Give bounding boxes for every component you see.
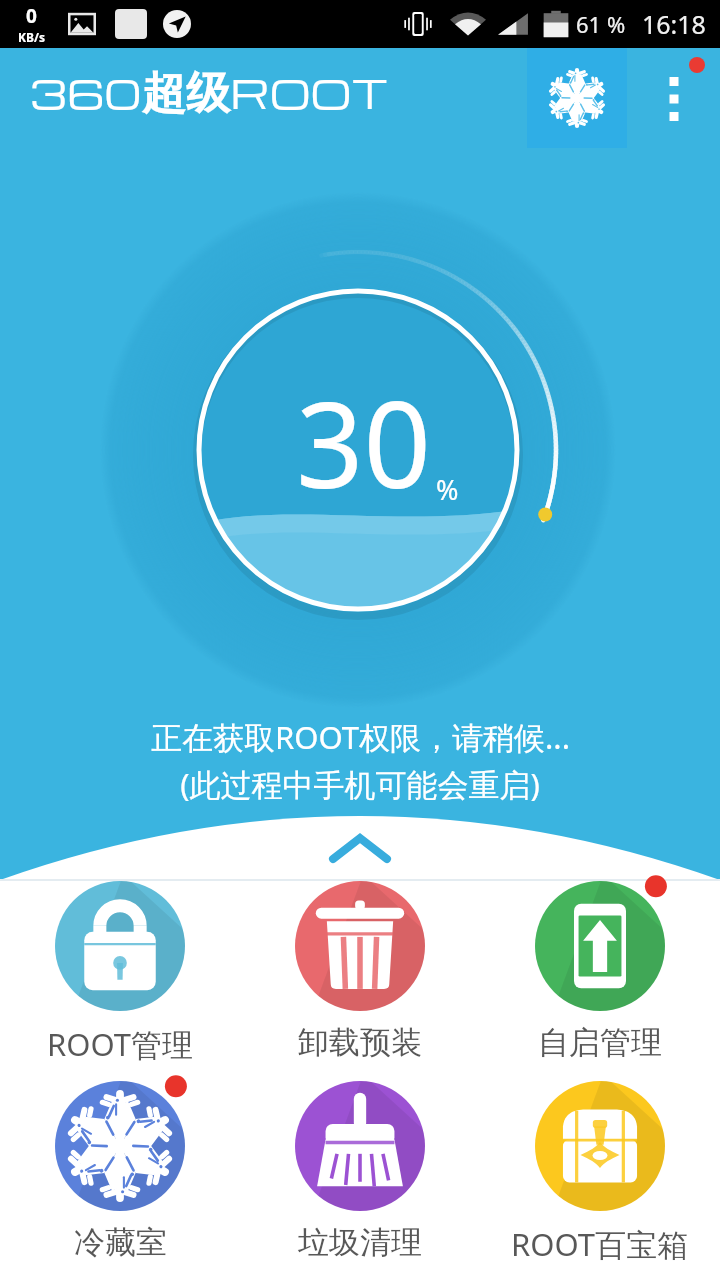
staticText: 30 (296, 362, 431, 523)
staticText: 360 (30, 64, 142, 119)
staticText: 0 (26, 3, 37, 29)
staticText: ROOT (230, 64, 388, 119)
staticText: 61 % (576, 9, 626, 39)
staticText: 垃圾清理 (298, 1223, 422, 1262)
button[interactable]: 冷藏室 (5, 1076, 235, 1261)
button[interactable]: 卸载预装 (245, 876, 475, 1061)
button[interactable]: Freezer (527, 48, 627, 148)
button[interactable]: 垃圾清理 (245, 1076, 475, 1261)
staticText: KB/s (18, 29, 45, 45)
staticText: (此过程中手机可能会重启) (180, 763, 540, 805)
staticText: 正在获取ROOT权限，请稍候... (151, 716, 570, 758)
button[interactable]: ROOT管理 (5, 876, 235, 1061)
staticText: ROOT百宝箱 (511, 1223, 689, 1265)
staticText: 卸载预装 (298, 1023, 422, 1062)
staticText: 超级 (142, 66, 230, 121)
staticText: % (436, 471, 459, 508)
staticText: 16:18 (642, 7, 706, 41)
staticText: ROOT管理 (47, 1023, 194, 1065)
staticText: 冷藏室 (74, 1223, 167, 1262)
button[interactable]: More options (627, 48, 720, 148)
button[interactable]: ROOT百宝箱 (485, 1076, 715, 1261)
button[interactable]: 自启管理 (485, 876, 715, 1061)
staticText: 自启管理 (538, 1023, 662, 1062)
